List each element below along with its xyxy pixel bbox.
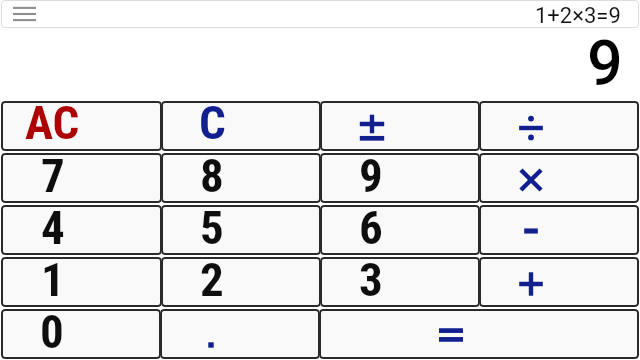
button[interactable]: 4 <box>1 205 162 255</box>
staticText: 0 <box>40 309 64 354</box>
button[interactable]: 8 <box>161 153 321 203</box>
other: Plus minus <box>355 112 389 146</box>
button[interactable]: 0 <box>1 309 161 359</box>
staticText: 5 <box>200 205 224 250</box>
staticText: 4 <box>41 205 65 250</box>
staticText: 8 <box>200 153 224 198</box>
staticText: 2 <box>200 257 224 302</box>
staticText: 9 <box>359 153 383 198</box>
staticText: 9 <box>587 27 623 99</box>
button[interactable]: 3 <box>320 257 480 307</box>
other: Plus <box>514 267 548 301</box>
staticText: 1+2×3=9 <box>535 3 621 28</box>
other: Multiply <box>514 163 548 197</box>
button[interactable]: Multiply <box>479 153 639 203</box>
other: Divide <box>514 111 548 145</box>
button[interactable]: 1 <box>1 257 162 307</box>
other: Decimal point <box>194 328 228 359</box>
button[interactable]: AC <box>1 101 162 151</box>
button[interactable]: C <box>161 101 321 151</box>
button[interactable]: Minus <box>479 205 639 255</box>
button[interactable]: 7 <box>1 153 162 203</box>
staticText: 7 <box>41 153 65 198</box>
button[interactable]: 5 <box>161 205 321 255</box>
other: Minus <box>514 214 548 248</box>
button[interactable]: 6 <box>320 205 480 255</box>
button[interactable]: Menu <box>1 1 48 28</box>
button[interactable]: 2 <box>161 257 321 307</box>
staticText: 6 <box>359 205 383 250</box>
button[interactable]: Plus <box>479 257 639 307</box>
staticText: 1 <box>41 257 65 302</box>
button[interactable]: Equals <box>319 309 639 359</box>
button[interactable]: 9 <box>320 153 480 203</box>
button[interactable]: Plus minus <box>320 101 480 151</box>
staticText: AC <box>25 101 80 145</box>
other: Equals <box>434 318 468 352</box>
staticText: C <box>199 101 226 145</box>
staticText: 3 <box>359 257 383 302</box>
button[interactable]: Decimal point <box>160 309 320 359</box>
button[interactable]: Divide <box>479 101 639 151</box>
